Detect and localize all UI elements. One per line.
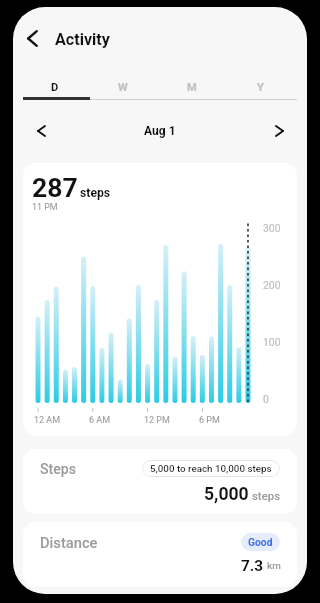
- staticText: Steps: [40, 461, 76, 478]
- staticText: 12 PM: [144, 415, 170, 426]
- staticText: 287: [32, 172, 78, 203]
- staticText: Aug 1: [144, 124, 176, 138]
- staticText: 12 AM: [34, 415, 61, 426]
- button[interactable]: Back: [17, 23, 47, 53]
- button[interactable]: Previous day: [25, 115, 57, 147]
- staticText: steps: [252, 489, 281, 502]
- staticText: Activity: [55, 30, 110, 49]
- staticText: 7.3: [241, 557, 264, 575]
- button[interactable]: Steps: [23, 449, 297, 514]
- staticText: km: [267, 560, 281, 572]
- button[interactable]: Y: [226, 74, 295, 100]
- staticText: Y: [257, 81, 264, 94]
- button[interactable]: D: [21, 74, 89, 100]
- staticText: 200: [263, 279, 281, 291]
- button[interactable]: Next day: [263, 115, 295, 147]
- staticText: 5,000: [204, 484, 249, 505]
- staticText: 0: [263, 393, 269, 405]
- button[interactable]: M: [157, 74, 226, 100]
- staticText: Distance: [40, 534, 98, 551]
- staticText: Good: [248, 536, 273, 548]
- staticText: W: [118, 81, 128, 94]
- staticText: M: [187, 81, 197, 94]
- staticText: steps: [80, 186, 111, 200]
- staticText: D: [51, 81, 59, 94]
- staticText: 5,000 to reach 10,000 steps: [150, 463, 272, 474]
- staticText: 6 PM: [199, 415, 220, 426]
- staticText: 300: [263, 222, 281, 234]
- button[interactable]: W: [89, 74, 157, 100]
- staticText: 6 AM: [89, 415, 111, 426]
- staticText: 11 PM: [32, 202, 58, 212]
- staticText: 100: [263, 336, 281, 348]
- button[interactable]: Distance: [23, 522, 297, 587]
